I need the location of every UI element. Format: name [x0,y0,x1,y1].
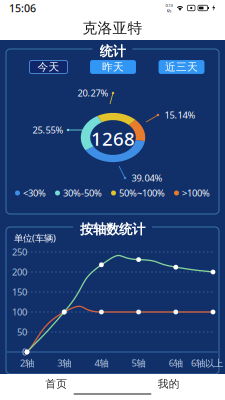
staticText: 39.04% [131,172,162,184]
staticText: 15:06 [9,1,36,15]
staticText: <30% [23,187,46,199]
staticText: 今天 [37,60,59,73]
staticText: 1268 [91,126,135,151]
staticText: 100 [12,306,27,318]
staticText: >100% [182,187,210,199]
staticText: 3轴 [57,357,71,369]
staticText: 近三天 [165,60,198,73]
staticText: K/s [166,8,171,13]
staticText: 15.14% [164,109,195,121]
staticText: 统计 [99,43,125,59]
staticText: 6轴以上 [191,357,223,369]
button[interactable]: 我的 [112,377,225,391]
button[interactable]: 近三天 [159,60,204,73]
staticText: 200 [12,266,27,278]
staticText: 6轴 [169,357,183,369]
staticText: 首页 [45,377,67,390]
staticText: 250 [12,246,27,258]
button[interactable]: 昨天 [90,60,135,73]
staticText: 按轴数统计 [80,221,145,237]
staticText: 150 [12,286,27,298]
staticText: 0 [22,346,27,358]
staticText: 30%-50% [63,187,102,199]
staticText: 50 [17,326,27,338]
staticText: 我的 [158,377,180,390]
staticText: 20.27% [77,87,108,99]
staticText: 4轴 [94,357,108,369]
staticText: 0.13 [165,3,172,8]
staticText: 25.55% [32,124,63,136]
staticText: 50%~100% [119,187,165,199]
staticText: 5轴 [132,357,146,369]
staticText: 单位(车辆) [14,232,56,244]
staticText: 2轴 [20,357,34,369]
button[interactable]: 首页 [0,377,112,391]
staticText: 昨天 [102,60,124,73]
staticText: 克洛亚特 [82,19,142,37]
button[interactable]: 今天 [29,60,67,73]
